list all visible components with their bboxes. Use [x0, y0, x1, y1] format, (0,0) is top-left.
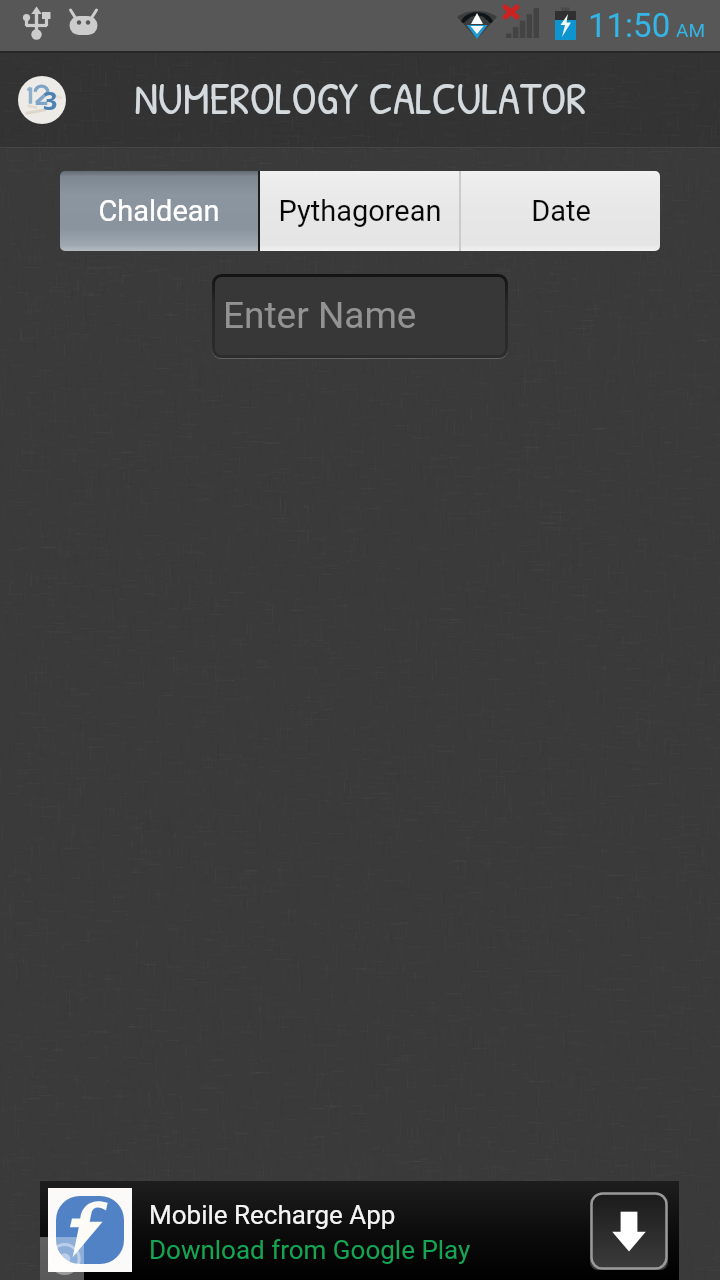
staticText: Enter Name — [223, 294, 417, 337]
button[interactable]: Pythagorean — [260, 171, 459, 251]
button[interactable]: Enter Name — [212, 274, 508, 358]
staticText: 3 — [43, 83, 58, 117]
button[interactable]: Ad choices — [40, 1237, 84, 1280]
staticText: AM — [676, 19, 705, 41]
button[interactable]: Numerology calculator logo — [18, 76, 66, 124]
staticText: NUMEROLOGY CALCULATOR — [134, 67, 587, 128]
staticText: Chaldean — [98, 194, 220, 228]
button[interactable]: Download — [590, 1192, 668, 1270]
button[interactable]: Mobile Recharge App — [40, 1181, 679, 1280]
staticText: Mobile Recharge App — [149, 1200, 396, 1230]
staticText: Download from Google Play — [149, 1235, 471, 1265]
button[interactable]: Chaldean — [60, 171, 258, 251]
staticText: 11:50 — [588, 6, 671, 45]
button[interactable]: Date — [461, 171, 660, 251]
staticText: Pythagorean — [278, 194, 442, 228]
staticText: Date — [531, 194, 591, 228]
